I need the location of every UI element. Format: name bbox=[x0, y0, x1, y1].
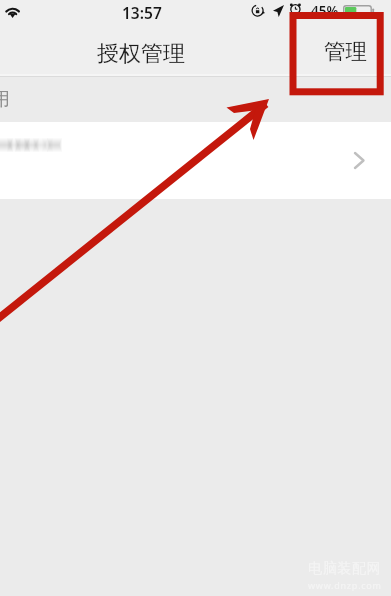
button[interactable] bbox=[0, 122, 391, 199]
staticText: 45% bbox=[311, 2, 339, 20]
staticText: 授权管理 bbox=[97, 40, 185, 68]
staticText: 13:57 bbox=[122, 2, 162, 23]
button[interactable]: 管理 bbox=[310, 28, 381, 75]
staticText: 管理 bbox=[324, 38, 367, 65]
staticText: 电脑装配网 bbox=[308, 560, 382, 578]
staticText: 用 bbox=[0, 88, 10, 111]
